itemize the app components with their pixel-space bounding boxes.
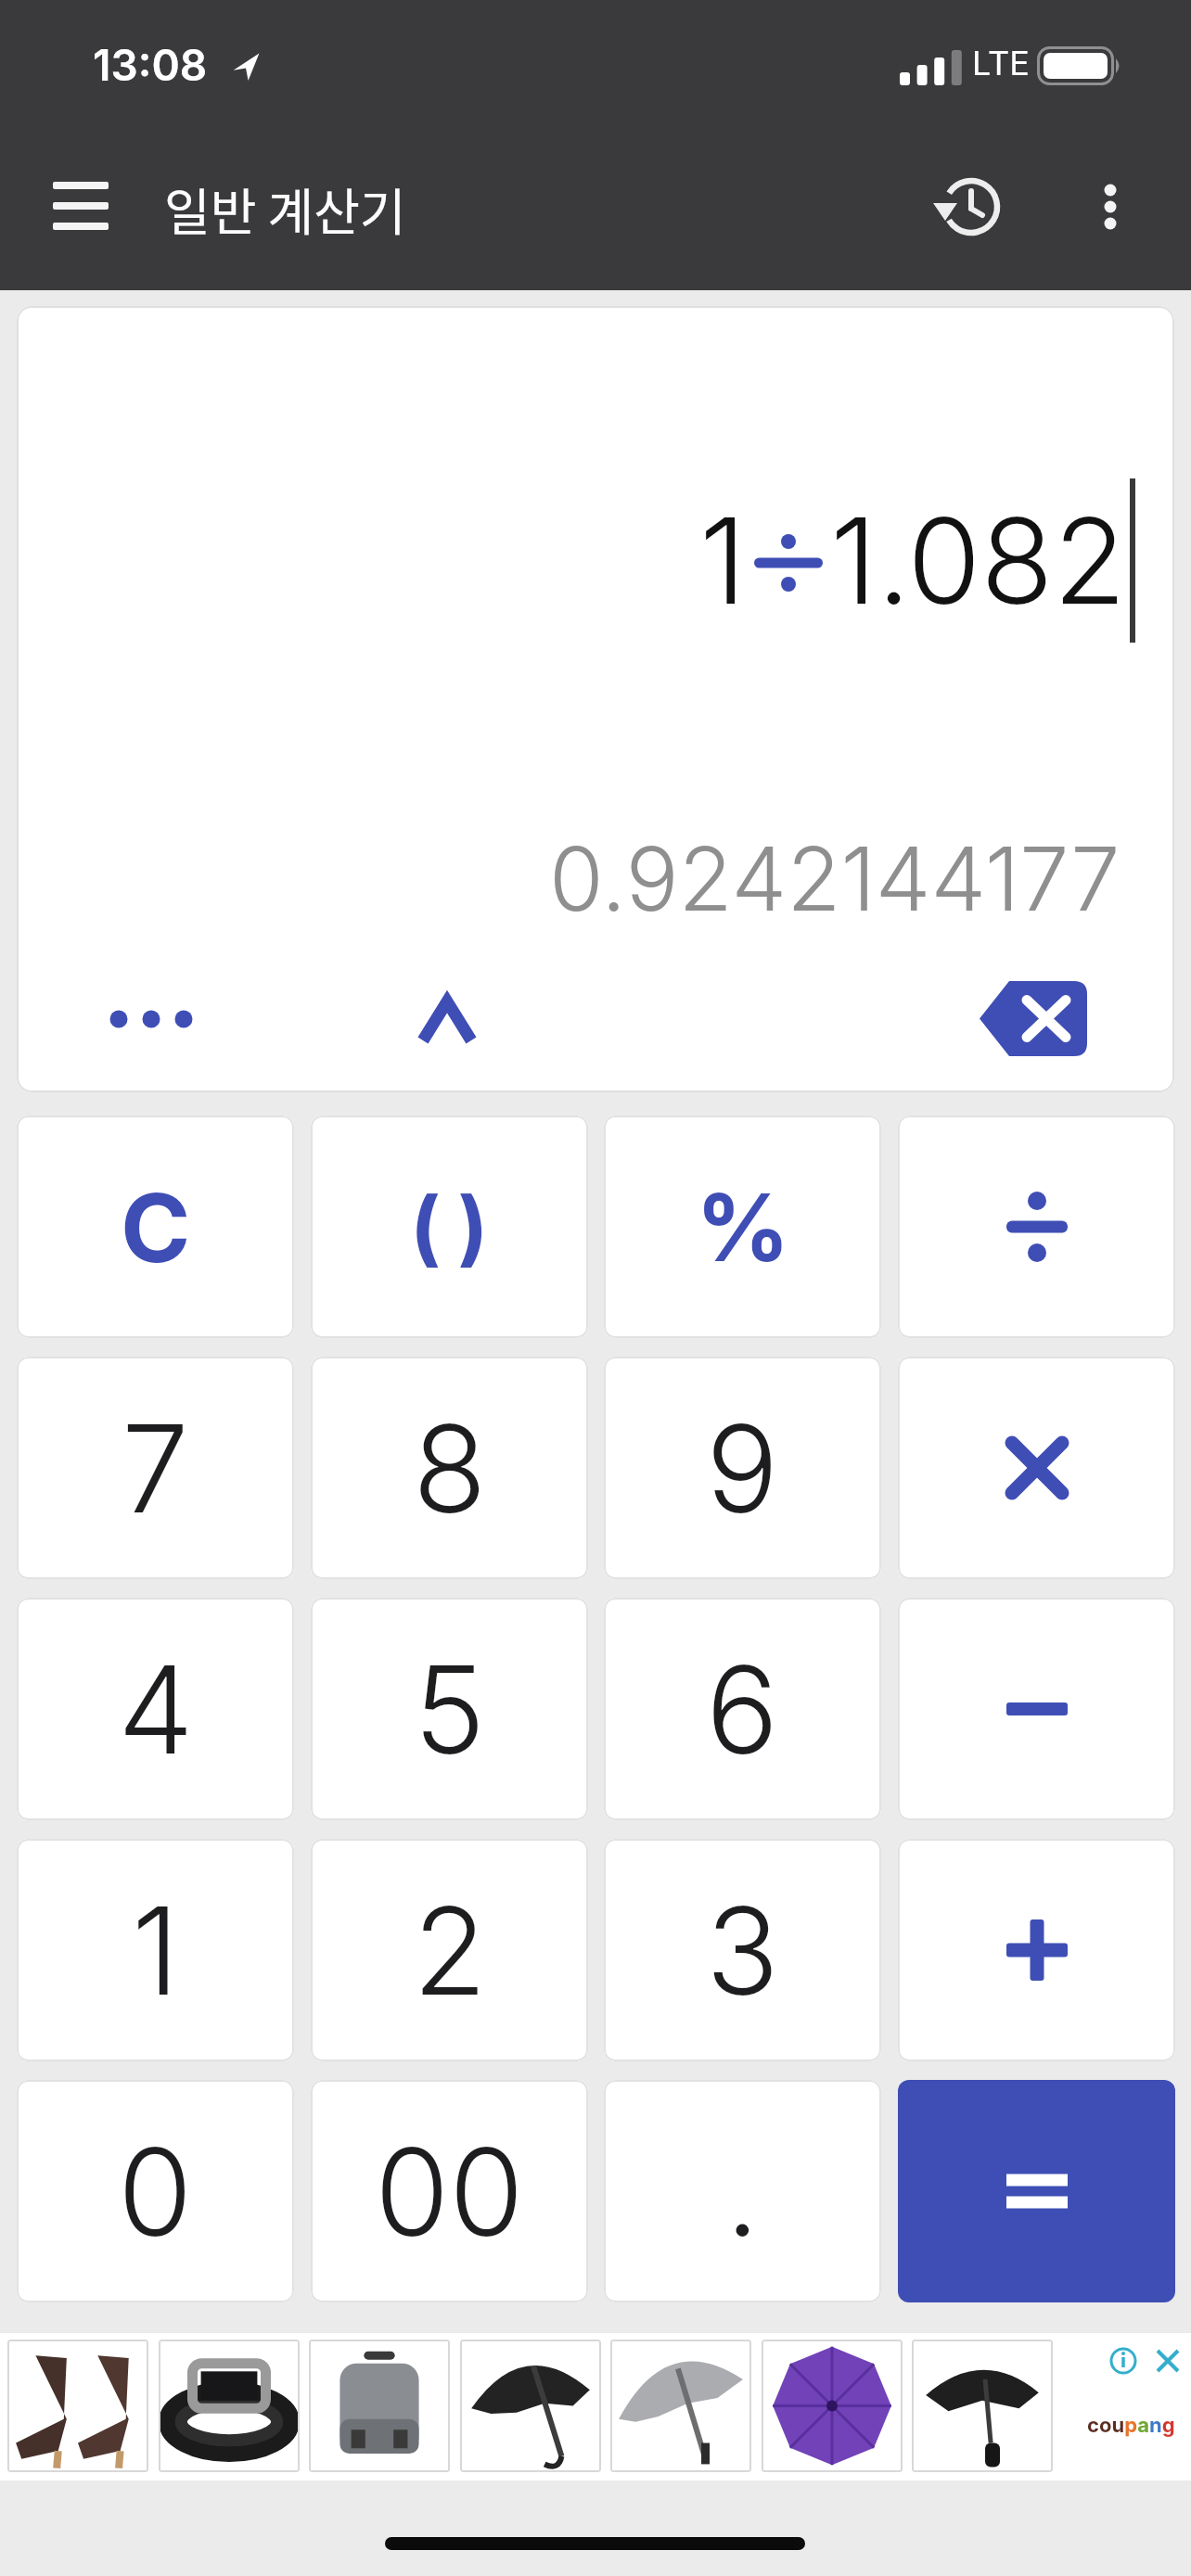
staticText: 5 [414,1637,486,1782]
staticText: 13:08 [93,39,208,91]
staticText: 4 [118,1637,194,1782]
button[interactable]: 2 [311,1839,588,2061]
button[interactable]: C [17,1116,294,1338]
staticText: 0.9242144177 [549,825,1121,932]
button[interactable]: . [604,2080,881,2302]
staticText: C [121,1170,191,1284]
staticText: 6 [706,1637,779,1782]
staticText: 00 [375,2119,524,2264]
staticText: 일반 계산기 [164,172,406,245]
button[interactable]: 00 [311,2080,588,2302]
staticText: () [410,1178,506,1276]
button[interactable] [1083,172,1139,246]
button[interactable] [898,1598,1175,1820]
staticText: 7 [122,1396,189,1541]
button[interactable] [898,1357,1175,1579]
button[interactable]: coupang [0,2333,1191,2480]
button[interactable] [387,974,507,1066]
staticText: . [725,2119,760,2264]
button[interactable] [898,1839,1175,2061]
button[interactable]: % [604,1116,881,1338]
staticText: 1 [699,489,747,632]
button[interactable]: 6 [604,1598,881,1820]
button[interactable]: 9 [604,1357,881,1579]
staticText: 3 [706,1878,779,2023]
button[interactable]: () [311,1116,588,1338]
button[interactable]: 4 [17,1598,294,1820]
staticText: % [696,1171,790,1283]
button[interactable] [932,168,1010,246]
button[interactable]: 1 [17,1839,294,2061]
staticText: 0 [118,2119,193,2264]
button[interactable] [963,964,1107,1066]
button[interactable]: 3 [604,1839,881,2061]
button[interactable]: 0 [17,2080,294,2302]
staticText: 2 [413,1878,487,2023]
button[interactable]: 7 [17,1357,294,1579]
staticText: 1 [132,1878,180,2023]
staticText: 8 [413,1396,487,1541]
staticText: 1.082 [830,489,1127,632]
button[interactable] [91,974,239,1048]
button[interactable] [898,1116,1175,1338]
staticText: LTE [972,43,1030,83]
button[interactable]: 5 [311,1598,588,1820]
button[interactable] [37,167,130,250]
staticText: coupang [1087,2413,1175,2438]
button[interactable]: 8 [311,1357,588,1579]
staticText: 9 [706,1396,779,1541]
button[interactable] [898,2080,1175,2302]
